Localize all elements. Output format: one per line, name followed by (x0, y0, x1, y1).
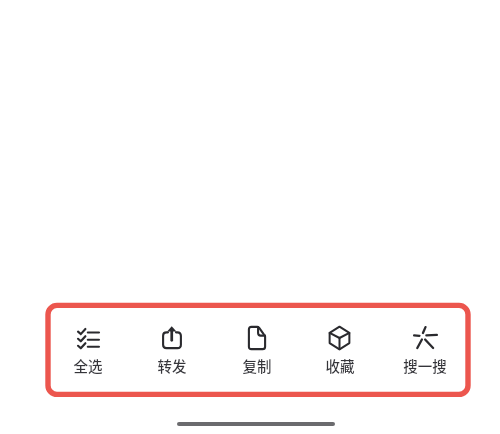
staticText: 复制 (215, 355, 299, 376)
button[interactable]: 转发 (130, 302, 214, 394)
staticText: 转发 (130, 355, 214, 376)
button[interactable]: 全选 (46, 302, 130, 394)
button[interactable]: 收藏 (298, 302, 382, 394)
staticText: 收藏 (298, 355, 382, 376)
staticText: 搜一搜 (383, 355, 467, 376)
button[interactable]: 搜一搜 (383, 302, 467, 394)
button[interactable]: 复制 (215, 302, 299, 394)
staticText: 全选 (46, 355, 130, 376)
